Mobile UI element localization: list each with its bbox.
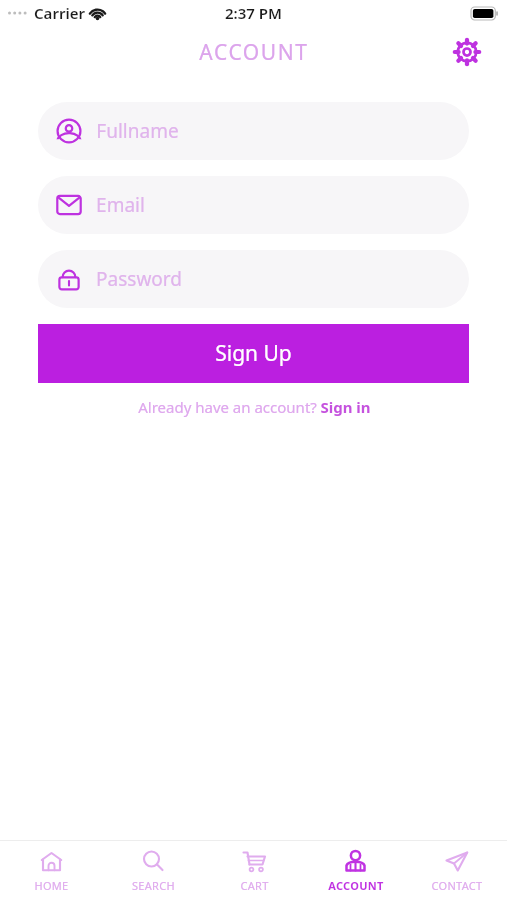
- staticText: Sign in: [320, 397, 371, 417]
- button[interactable]: Sign in: [319, 397, 372, 417]
- button[interactable]: Email: [38, 176, 469, 234]
- staticText: CART: [240, 878, 269, 893]
- button[interactable]: Fullname: [38, 102, 469, 160]
- staticText: Password: [96, 266, 182, 292]
- staticText: Already have an account?: [136, 397, 319, 417]
- staticText: ACCOUNT: [199, 38, 309, 67]
- button[interactable]: SEARCH: [102, 843, 204, 899]
- staticText: Fullname: [96, 118, 179, 144]
- staticText: SEARCH: [132, 878, 175, 893]
- staticText: Email: [96, 192, 145, 218]
- staticText: 2:37 PM: [225, 3, 282, 23]
- button[interactable]: Password: [38, 250, 469, 308]
- staticText: ACCOUNT: [328, 878, 384, 893]
- staticText: HOME: [34, 878, 69, 893]
- button[interactable]: Settings: [449, 34, 485, 70]
- staticText: Carrier: [34, 3, 85, 23]
- button[interactable]: ACCOUNT: [305, 843, 406, 899]
- staticText: CONTACT: [431, 878, 483, 893]
- button[interactable]: HOME: [0, 843, 102, 899]
- button[interactable]: Sign Up: [38, 324, 469, 383]
- staticText: Sign Up: [215, 339, 292, 368]
- button[interactable]: CONTACT: [406, 843, 507, 899]
- button[interactable]: CART: [204, 843, 305, 899]
